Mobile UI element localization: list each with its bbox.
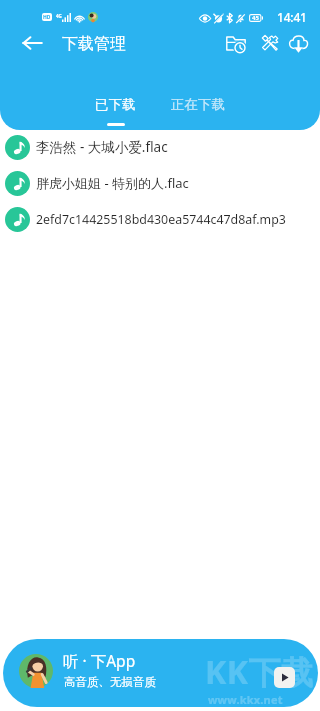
button[interactable]: Download — [284, 29, 312, 57]
staticText: 45 — [252, 14, 259, 22]
staticText: 下载管理 — [62, 34, 126, 54]
staticText: 已下载 — [95, 96, 136, 113]
button[interactable]: 已下载 — [89, 96, 142, 126]
button[interactable]: Play — [274, 667, 295, 688]
button[interactable]: Back — [16, 29, 48, 57]
staticText: HD — [43, 14, 51, 21]
button[interactable]: Settings — [256, 29, 284, 57]
button[interactable]: KK下载 — [3, 639, 318, 707]
button[interactable]: 胖虎小姐姐 - 特别的人.flac — [0, 168, 320, 198]
staticText: 2efd7c14425518bd430ea5744c47d8af.mp3 — [36, 211, 286, 228]
staticText: 正在下载 — [171, 96, 225, 113]
staticText: 4G — [56, 13, 62, 19]
staticText: KK下载 — [205, 650, 314, 694]
button[interactable]: 李浩然 - 大城小爱.flac — [0, 132, 320, 162]
button[interactable]: 正在下载 — [165, 96, 231, 123]
staticText: 胖虎小姐姐 - 特别的人.flac — [36, 174, 189, 192]
staticText: 高音质、无损音质 — [64, 675, 156, 689]
staticText: 李浩然 - 大城小爱.flac — [36, 138, 168, 156]
button[interactable]: 2efd7c14425518bd430ea5744c47d8af.mp3 — [0, 204, 320, 234]
button[interactable]: Download history — [222, 29, 250, 57]
staticText: 听 · 下App — [63, 650, 136, 671]
staticText: 14:41 — [277, 9, 307, 25]
staticText: www.kkx.net — [208, 692, 283, 707]
